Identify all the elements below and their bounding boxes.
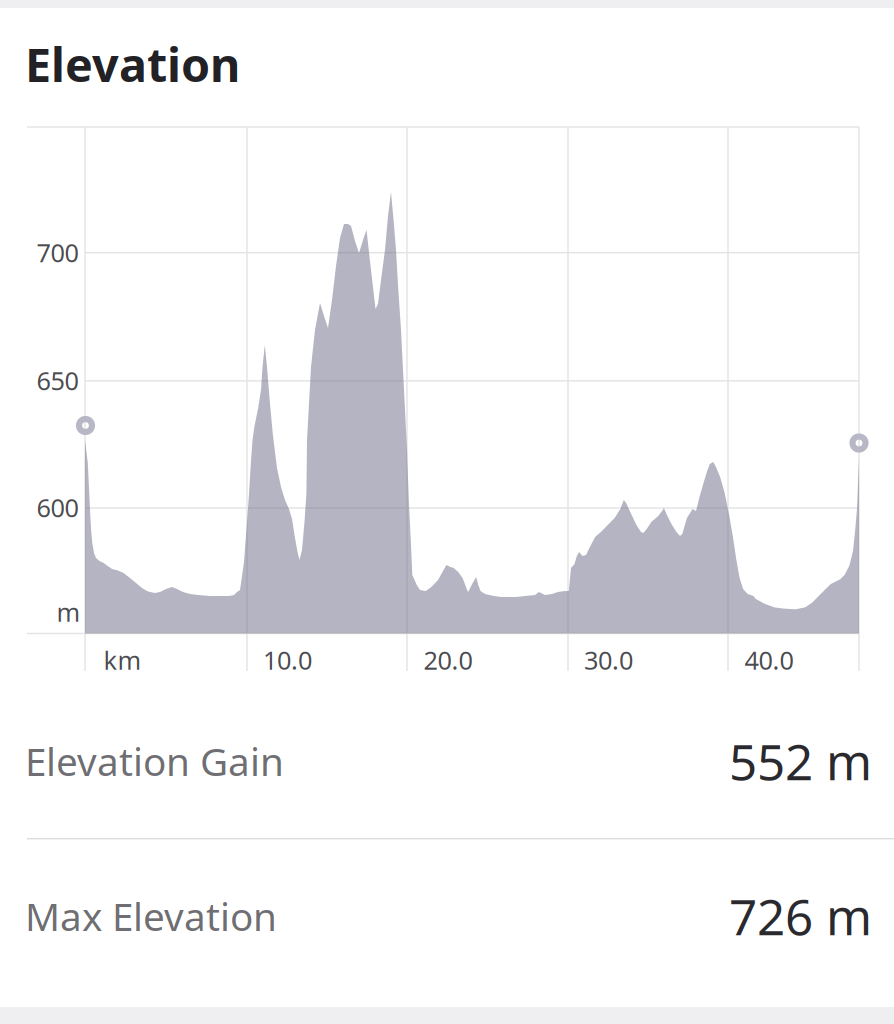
staticText: 650 [36,363,78,397]
staticText: 726 m [729,883,872,949]
staticText: Elevation [25,33,240,95]
staticText: 600 [36,490,78,524]
staticText: 40.0 [744,643,793,677]
staticText: 552 m [729,728,872,794]
staticText: Max Elevation [25,890,277,942]
staticText: 10.0 [263,643,312,677]
staticText: Elevation Gain [25,735,284,787]
staticText: 30.0 [584,643,633,677]
staticText: 20.0 [423,643,472,677]
staticText: km [103,643,141,677]
staticText: m [56,595,80,629]
button[interactable]: Max Elevation [0,856,894,976]
button[interactable]: Elevation Gain [0,701,894,821]
staticText: 700 [36,235,78,269]
